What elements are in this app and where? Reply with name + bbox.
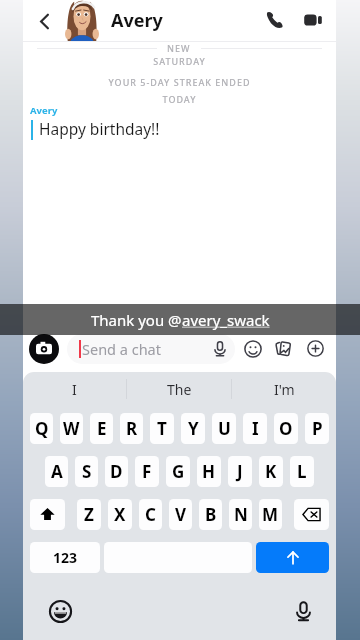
staticText: Q [35, 417, 49, 440]
button[interactable]: 123 [30, 542, 100, 573]
button[interactable]: Q [30, 413, 53, 444]
button[interactable]: I [243, 413, 267, 444]
staticText: Thank you @ [91, 310, 182, 330]
staticText: SATURDAY [23, 55, 336, 67]
staticText: Z [84, 503, 94, 526]
button[interactable]: C [139, 499, 162, 530]
staticText: W [63, 417, 80, 440]
staticText: Avery [111, 8, 163, 33]
staticText: P [312, 417, 323, 440]
button[interactable]: Video call [297, 4, 329, 36]
button[interactable]: D [105, 456, 128, 487]
button[interactable]: R [120, 413, 143, 444]
staticText: J [237, 460, 243, 483]
staticText: A [51, 460, 63, 483]
button[interactable]: M [259, 499, 282, 530]
button[interactable]: V [169, 499, 192, 530]
button[interactable]: Z [77, 499, 101, 530]
staticText: I'm [274, 380, 295, 399]
button[interactable]: Stickers [269, 335, 296, 362]
staticText: I [252, 417, 259, 440]
button[interactable]: W [60, 413, 83, 444]
button[interactable]: A [45, 456, 68, 487]
staticText: S [82, 460, 92, 483]
button[interactable]: E [90, 413, 113, 444]
button[interactable]: Emoji [45, 596, 75, 626]
button[interactable]: T [150, 413, 174, 444]
button[interactable]: Voice message [205, 334, 235, 364]
staticText: avery_swack [182, 310, 270, 330]
staticText: N [234, 503, 248, 526]
button[interactable]: More [302, 335, 329, 362]
staticText: M [262, 503, 279, 526]
button[interactable]: I [23, 372, 126, 406]
button[interactable]: Call [259, 4, 291, 36]
button[interactable]: Camera [29, 334, 59, 364]
staticText: Happy birthday!! [39, 118, 160, 139]
staticText: R [126, 417, 138, 440]
button[interactable]: X [108, 499, 132, 530]
button[interactable]: Voice input [288, 596, 318, 626]
staticText: F [142, 460, 152, 483]
button[interactable]: Send a chat [67, 334, 235, 364]
staticText: D [110, 460, 123, 483]
staticText: V [175, 503, 187, 526]
button[interactable]: Emoji [239, 335, 266, 362]
button[interactable]: Back [28, 5, 60, 37]
button[interactable]: L [290, 456, 314, 487]
staticText: TODAY [23, 93, 336, 105]
staticText: G [172, 460, 185, 483]
staticText: The [167, 380, 192, 399]
button[interactable]: G [166, 456, 190, 487]
button[interactable]: B [199, 499, 222, 530]
staticText: 123 [53, 548, 78, 567]
staticText: Avery [30, 104, 58, 117]
staticText: K [265, 460, 277, 483]
button[interactable]: N [229, 499, 252, 530]
button[interactable]: The [127, 372, 231, 406]
button[interactable]: J [228, 456, 252, 487]
staticText: T [157, 417, 167, 440]
staticText: I [72, 380, 77, 399]
button[interactable]: O [274, 413, 298, 444]
button[interactable]: P [305, 413, 329, 444]
staticText: H [202, 460, 216, 483]
staticText: YOUR 5-DAY STREAK ENDED [23, 76, 336, 88]
button[interactable]: I'm [232, 372, 336, 406]
staticText: B [205, 503, 217, 526]
button[interactable]: Key [294, 499, 329, 530]
button[interactable]: S [75, 456, 98, 487]
staticText: Y [188, 417, 199, 440]
button[interactable]: Key [30, 499, 65, 530]
staticText: C [145, 503, 156, 526]
button[interactable]: Send [256, 542, 329, 573]
staticText: U [218, 417, 231, 440]
staticText: E [97, 417, 107, 440]
button[interactable]: K [259, 456, 283, 487]
staticText: L [297, 460, 307, 483]
staticText: X [114, 503, 126, 526]
button[interactable]: F [135, 456, 159, 487]
button[interactable]: H [197, 456, 221, 487]
button[interactable]: U [212, 413, 236, 444]
staticText: NEW [167, 42, 191, 54]
staticText: Send a chat [82, 339, 161, 359]
staticText: O [279, 417, 293, 440]
button[interactable]: Y [181, 413, 205, 444]
